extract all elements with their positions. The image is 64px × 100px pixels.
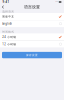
button[interactable]: 保存设置 — [2, 52, 62, 58]
staticText: 保存设置 — [26, 53, 38, 57]
button[interactable]: 简体中文 — [0, 13, 64, 20]
staticText: 24 小时制 — [2, 35, 16, 39]
button[interactable]: 12 小时制 — [0, 41, 64, 48]
staticText: 时间格式 — [2, 30, 14, 34]
staticText: 9:41 — [3, 0, 10, 4]
staticText: English — [2, 22, 12, 25]
staticText: ··· — [55, 0, 58, 4]
staticText: 简体中文 — [2, 15, 14, 18]
button[interactable]: Back — [0, 4, 6, 10]
staticText: 选择语言 — [2, 10, 14, 13]
button[interactable]: 24 小时制 — [0, 33, 64, 40]
button[interactable]: English — [0, 20, 64, 27]
staticText: 语言设置 — [24, 4, 40, 9]
staticText: 12 小时制 — [2, 42, 16, 46]
